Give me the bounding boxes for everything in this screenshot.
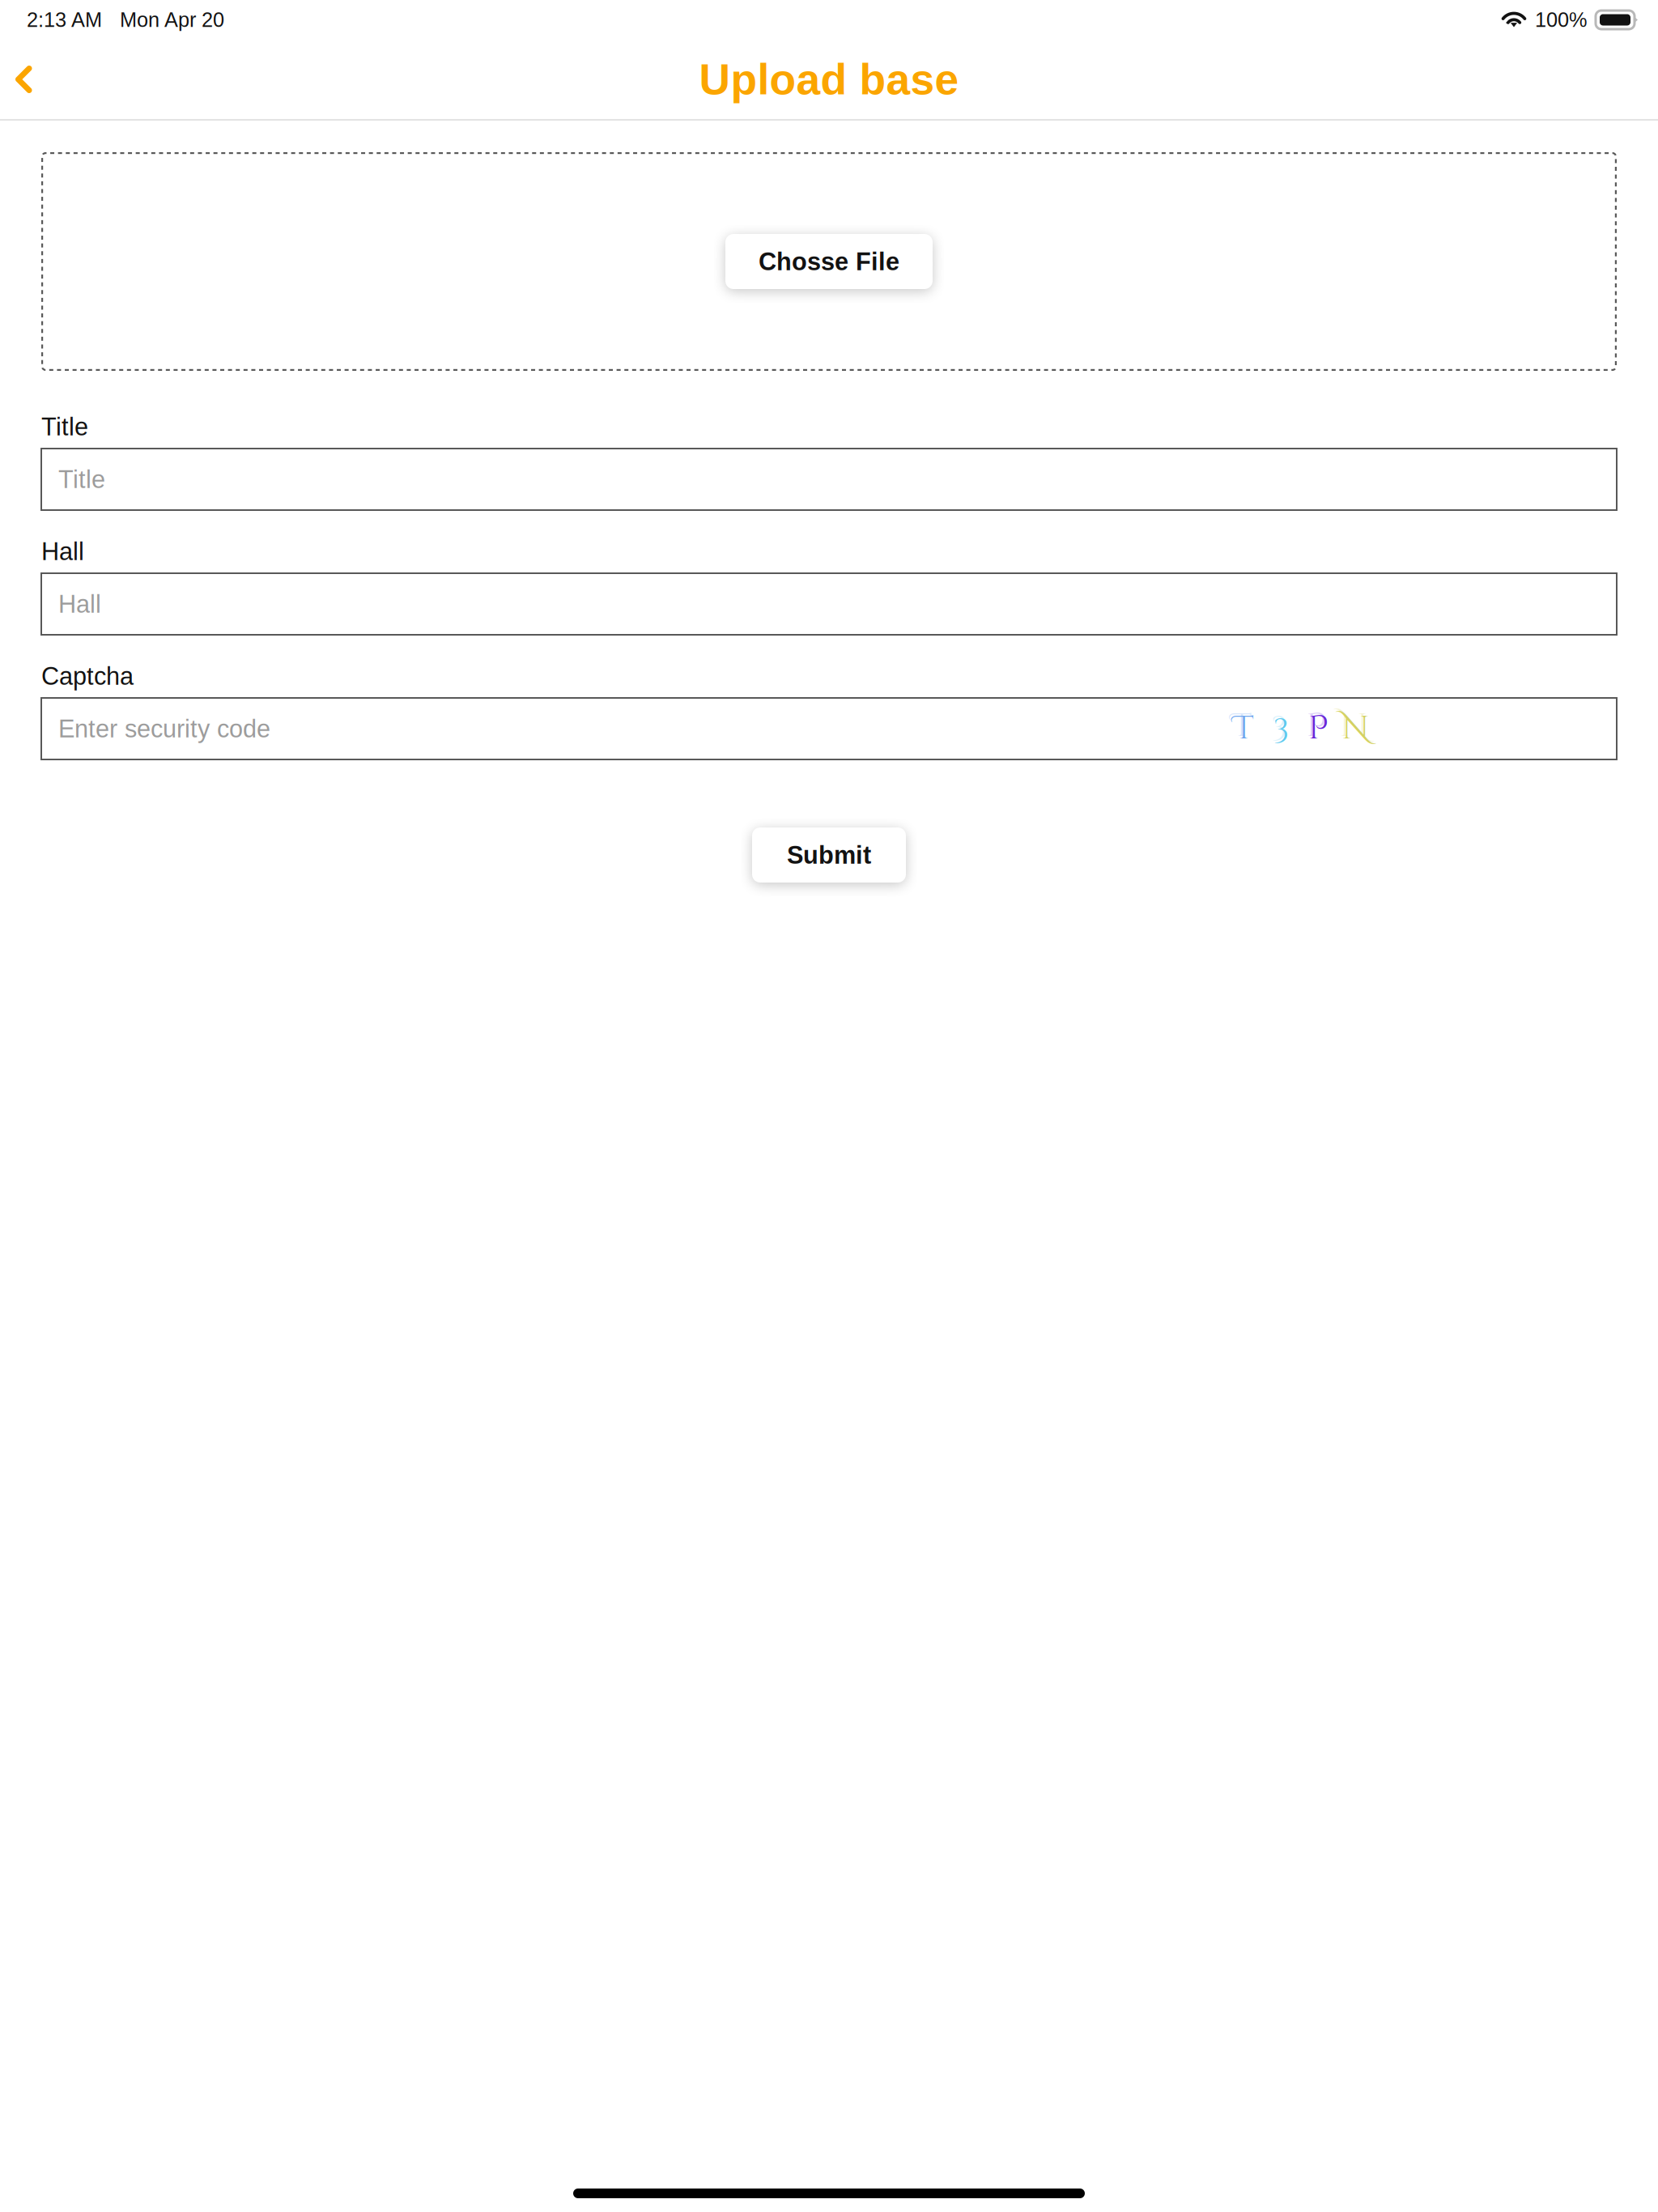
staticText: Hall xyxy=(41,538,84,565)
button[interactable]: Title xyxy=(41,449,1617,510)
staticText: Chosse File xyxy=(759,248,899,275)
staticText: 3 xyxy=(1271,704,1287,748)
staticText: P xyxy=(1308,707,1329,750)
staticText: 100% xyxy=(1535,8,1588,31)
staticText: N xyxy=(1340,704,1367,748)
staticText: 3 xyxy=(1273,707,1289,750)
staticText: Submit xyxy=(787,841,871,869)
staticText: T xyxy=(1232,704,1252,748)
staticText: N xyxy=(1342,707,1369,750)
staticText: T xyxy=(1234,707,1254,750)
button[interactable]: Back xyxy=(0,48,60,111)
staticText: Hall xyxy=(58,590,101,618)
button[interactable]: Submit xyxy=(752,827,906,883)
button[interactable]: Chosse File xyxy=(725,234,933,289)
staticText: Title xyxy=(41,413,88,441)
staticText: P xyxy=(1306,704,1326,748)
button[interactable]: Hall xyxy=(41,573,1617,635)
staticText: Captcha xyxy=(41,662,134,690)
staticText: Enter security code xyxy=(58,715,270,743)
staticText: Upload base xyxy=(699,55,959,103)
staticText: Title xyxy=(58,465,105,493)
button[interactable]: Enter security code xyxy=(41,698,1617,759)
staticText: Mon Apr 20 xyxy=(120,8,224,31)
staticText: 2:13 AM xyxy=(27,8,102,31)
